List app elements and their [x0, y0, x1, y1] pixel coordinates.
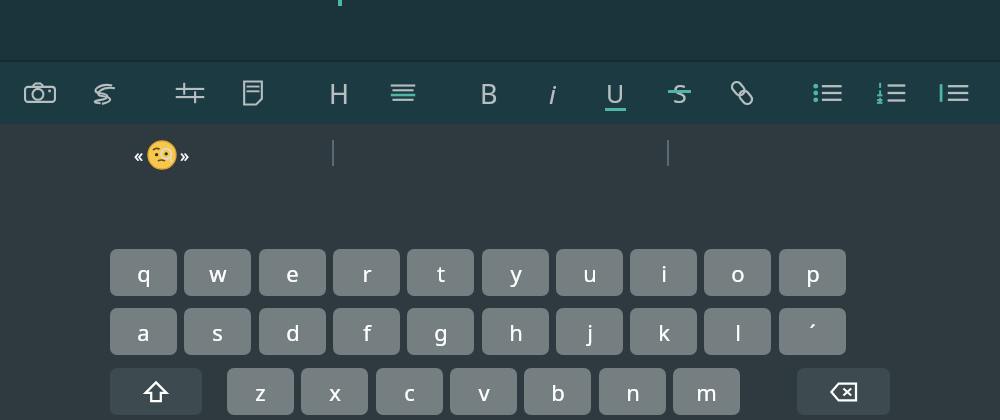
button[interactable]: u [556, 249, 623, 296]
button[interactable]: Link [718, 69, 766, 117]
button[interactable]: r [333, 249, 400, 296]
button[interactable]: x [301, 368, 368, 415]
staticText: » [180, 143, 190, 168]
button[interactable]: k [630, 308, 697, 355]
button[interactable]: n [599, 368, 666, 415]
button[interactable]: q [110, 249, 177, 296]
button[interactable]: Bold [465, 69, 513, 117]
staticText: o [731, 258, 745, 288]
button[interactable]: Backspace [797, 368, 890, 415]
button[interactable]: t [407, 249, 474, 296]
staticText: z [255, 377, 266, 407]
staticText: c [404, 377, 415, 407]
button[interactable]: Heading [315, 69, 363, 117]
button[interactable]: z [227, 368, 294, 415]
staticText: g [434, 317, 448, 347]
button[interactable]: y [482, 249, 549, 296]
button[interactable]: Underline [591, 69, 639, 117]
staticText: i [661, 258, 667, 288]
button[interactable]: a [110, 308, 177, 355]
button[interactable]: Numbered list [867, 69, 915, 117]
button[interactable]: Camera [16, 69, 64, 117]
button[interactable]: Shift [110, 368, 202, 415]
staticText: B [480, 75, 498, 112]
button[interactable]: Strikethrough [655, 69, 703, 117]
button[interactable]: Note [229, 69, 277, 117]
button[interactable]: b [524, 368, 591, 415]
staticText: h [509, 317, 523, 347]
button[interactable]: h [482, 308, 549, 355]
button[interactable]: l [704, 308, 771, 355]
button[interactable]: Italic [528, 69, 576, 117]
staticText: j [587, 317, 593, 347]
staticText: s [212, 317, 223, 347]
staticText: t [437, 258, 445, 288]
button[interactable]: w [184, 249, 251, 296]
staticText: l [735, 317, 741, 347]
staticText: q [137, 258, 151, 288]
button[interactable]: f [333, 308, 400, 355]
staticText: ´ [809, 317, 816, 347]
staticText: d [286, 317, 300, 347]
button[interactable]: ´ [779, 308, 846, 355]
button[interactable]: Bulleted list [804, 69, 852, 117]
staticText: e [286, 258, 299, 288]
staticText: i [549, 76, 556, 111]
staticText: v [478, 377, 490, 407]
button[interactable]: o [704, 249, 771, 296]
staticText: S [673, 76, 687, 110]
staticText: U [606, 76, 625, 110]
button[interactable]: Align [379, 69, 427, 117]
staticText: b [551, 377, 565, 407]
button[interactable]: m [673, 368, 740, 415]
button[interactable]: Adjust [166, 69, 214, 117]
button[interactable]: v [450, 368, 517, 415]
button[interactable]: Scribble [78, 69, 126, 117]
button[interactable]: « [112, 124, 212, 186]
staticText: w [209, 258, 227, 288]
staticText: H [329, 75, 350, 112]
button[interactable]: d [259, 308, 326, 355]
staticText: r [362, 258, 372, 288]
button[interactable]: c [376, 368, 443, 415]
staticText: « [134, 143, 144, 168]
staticText: y [510, 258, 522, 288]
button[interactable]: Indent [930, 69, 978, 117]
button[interactable]: p [779, 249, 846, 296]
button[interactable]: s [184, 308, 251, 355]
staticText: x [329, 377, 341, 407]
button[interactable]: e [259, 249, 326, 296]
staticText: n [626, 377, 640, 407]
staticText: k [658, 317, 670, 347]
staticText: u [583, 258, 597, 288]
staticText: p [806, 258, 820, 288]
staticText: a [137, 317, 150, 347]
button[interactable]: i [630, 249, 697, 296]
staticText: f [363, 317, 371, 347]
button[interactable]: j [556, 308, 623, 355]
button[interactable]: g [407, 308, 474, 355]
staticText: m [696, 377, 717, 407]
